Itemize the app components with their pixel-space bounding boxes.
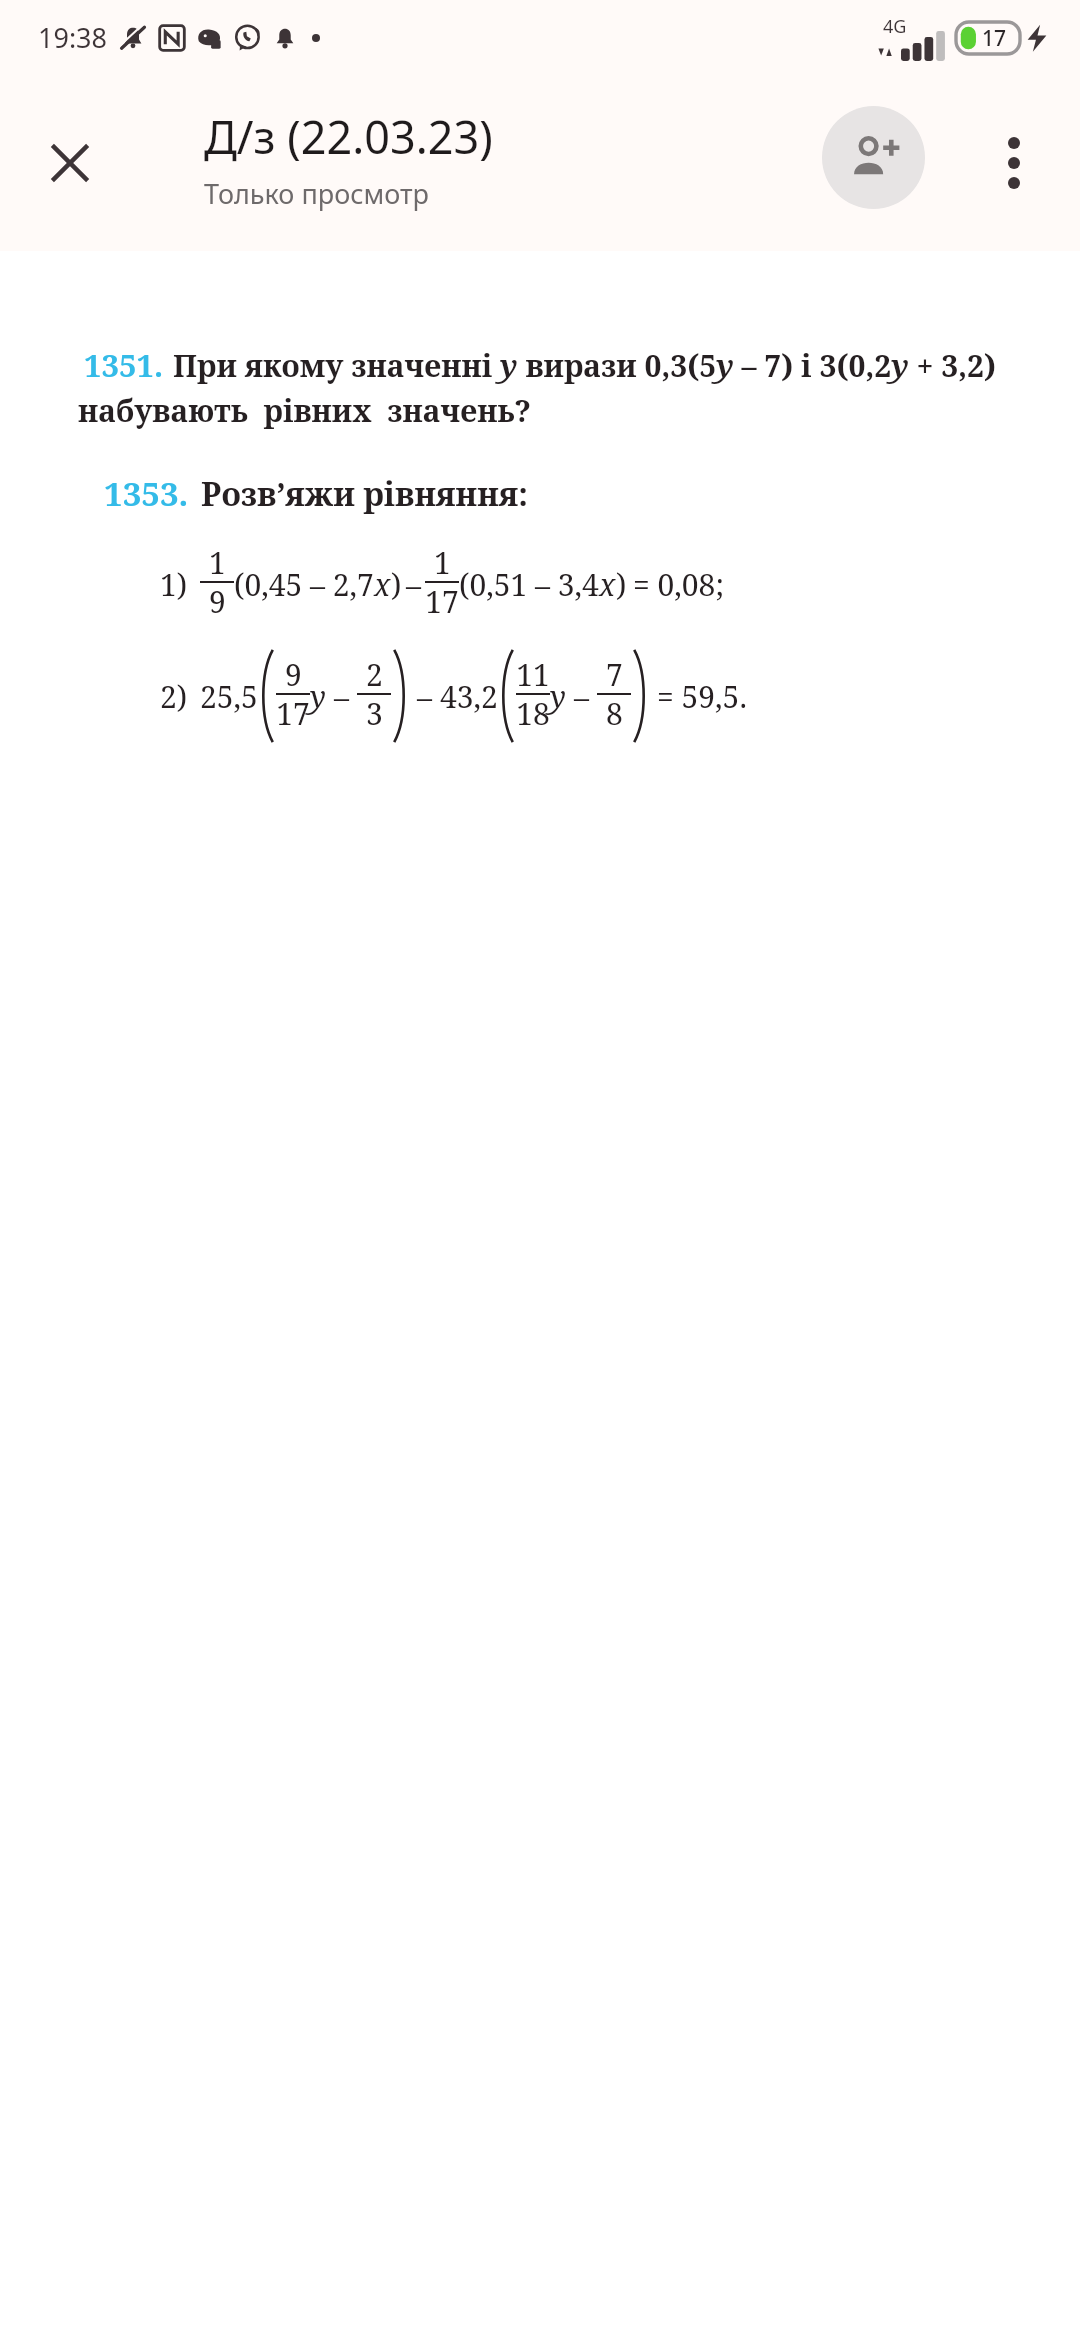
staticText: )	[616, 564, 627, 605]
staticText: 19:38	[38, 19, 108, 56]
staticText: = 0,08;	[633, 564, 724, 605]
staticText: –	[334, 676, 349, 717]
staticText: 2	[366, 654, 383, 695]
staticText: 18	[516, 693, 550, 734]
staticText: набувають рівних значень?	[78, 390, 532, 431]
button[interactable]: Close	[22, 115, 118, 211]
staticText: 2)	[160, 676, 188, 717]
staticText: 3	[366, 693, 383, 734]
staticText: 1353.	[104, 471, 189, 516]
staticText: 43,2	[440, 676, 498, 717]
staticText: –	[406, 564, 421, 605]
staticText: 1	[434, 542, 451, 583]
staticText: 11	[516, 654, 550, 695]
staticText: –	[574, 676, 589, 717]
staticText: 1351.	[84, 344, 164, 386]
staticText: При якому значенні y вирази 0,3(5y – 7) …	[173, 345, 997, 386]
staticText: 7	[606, 654, 623, 695]
staticText: (0,51 – 3,4	[459, 564, 599, 605]
staticText: (0,45 – 2,7	[234, 564, 374, 605]
staticText: Розв’яжи рівняння:	[201, 472, 528, 516]
staticText: 1)	[160, 564, 188, 605]
staticText: Д/з (22.03.23)	[204, 106, 493, 167]
staticText: 9	[285, 654, 302, 695]
staticText: –	[417, 676, 432, 717]
staticText: 9	[209, 581, 226, 622]
staticText: = 59,5.	[657, 676, 747, 717]
staticText: 17	[425, 581, 459, 622]
staticText: y	[310, 676, 326, 717]
staticText: 17	[276, 693, 310, 734]
staticText: )	[391, 564, 402, 605]
staticText: x	[599, 564, 616, 605]
staticText: x	[374, 564, 391, 605]
staticText: y	[550, 676, 566, 717]
staticText: 1	[209, 542, 226, 583]
staticText: 25,5	[200, 676, 258, 717]
staticText: 17	[982, 24, 1007, 53]
staticText: Только просмотр	[204, 175, 429, 212]
button[interactable]: More options	[968, 117, 1060, 209]
staticText: 4G	[883, 14, 907, 39]
staticText: 8	[606, 693, 623, 734]
button[interactable]: Add people	[822, 106, 925, 209]
